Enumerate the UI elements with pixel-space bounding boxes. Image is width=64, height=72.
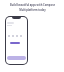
button[interactable]: Get started xyxy=(10,42,20,44)
staticText: Multiplatform today xyxy=(19,8,46,12)
staticText: Build beautiful apps with Compose xyxy=(10,3,55,7)
button[interactable]: Bottom navigation xyxy=(7,56,26,60)
